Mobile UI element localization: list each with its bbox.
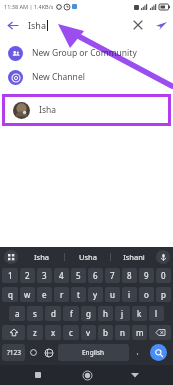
staticText: 11:38 AM | 1.4KB/s <box>4 3 54 10</box>
staticText: n <box>120 327 125 338</box>
staticText: x <box>51 327 56 338</box>
button[interactable]: New Group or Community <box>0 41 173 65</box>
staticText: a <box>15 308 20 319</box>
staticText: 0 <box>161 270 166 281</box>
staticText: English <box>82 348 105 357</box>
button[interactable]: English <box>58 344 129 361</box>
button[interactable]: 7 <box>105 268 120 283</box>
button[interactable]: Backspace <box>149 325 171 340</box>
button[interactable]: Ishani <box>111 247 156 266</box>
button[interactable]: 3 <box>37 268 52 283</box>
staticText: o <box>144 289 149 300</box>
button[interactable]: g <box>81 306 96 321</box>
button[interactable]: ?123 <box>2 344 25 361</box>
button[interactable]: Back <box>0 13 24 37</box>
button[interactable]: Home <box>77 365 97 385</box>
button[interactable]: m <box>132 325 147 340</box>
button[interactable]: 1 <box>2 268 18 283</box>
staticText: 4 <box>59 270 64 281</box>
staticText: Isha <box>28 19 46 31</box>
button[interactable]: w <box>20 287 35 302</box>
button[interactable]: e <box>37 287 52 302</box>
button[interactable]: j <box>115 306 130 321</box>
button[interactable]: p <box>156 287 171 302</box>
button[interactable]: Send <box>149 13 173 37</box>
button[interactable]: q <box>2 287 18 302</box>
button[interactable]: u <box>105 287 120 302</box>
button[interactable]: a <box>9 306 25 321</box>
staticText: h <box>103 308 108 319</box>
button[interactable]: l <box>149 306 164 321</box>
staticText: t <box>77 289 80 300</box>
staticText: 5 <box>76 270 81 281</box>
button[interactable]: c <box>63 325 79 340</box>
button[interactable]: s <box>27 306 43 321</box>
staticText: s <box>33 308 37 319</box>
staticText: 2 <box>25 270 30 281</box>
staticText: Isha <box>39 104 56 116</box>
staticText: New Channel <box>32 71 85 83</box>
button[interactable]: t <box>71 287 86 302</box>
button[interactable]: Clear <box>127 14 149 36</box>
button[interactable]: Shift <box>2 325 25 340</box>
button[interactable]: z <box>27 325 43 340</box>
button[interactable]: New Channel <box>0 65 173 89</box>
button[interactable]: 0 <box>156 268 171 283</box>
button[interactable]: o <box>139 287 154 302</box>
button[interactable]: Usha <box>65 247 110 266</box>
button[interactable]: d <box>45 306 61 321</box>
button[interactable]: Search <box>150 344 167 361</box>
staticText: f <box>70 308 73 319</box>
button[interactable]: r <box>54 287 69 302</box>
staticText: u <box>110 289 115 300</box>
button[interactable]: k <box>132 306 147 321</box>
staticText: r <box>60 289 64 300</box>
staticText: l <box>155 308 158 319</box>
staticText: j <box>121 308 124 319</box>
staticText: 9 <box>144 270 149 281</box>
button[interactable]: Period <box>131 344 143 361</box>
staticText: z <box>33 327 37 338</box>
button[interactable]: x <box>45 325 61 340</box>
staticText: Ishani <box>123 252 145 262</box>
button[interactable]: 8 <box>122 268 137 283</box>
staticText: b <box>103 327 108 338</box>
staticText: k <box>137 308 142 319</box>
staticText: 8 <box>127 270 132 281</box>
staticText: e <box>42 289 47 300</box>
staticText: 1 <box>8 270 13 281</box>
button[interactable]: v <box>81 325 96 340</box>
staticText: q <box>8 289 13 300</box>
button[interactable]: Keyboard options <box>4 250 18 264</box>
staticText: ?123 <box>7 348 21 357</box>
button[interactable]: f <box>63 306 79 321</box>
staticText: p <box>161 289 166 300</box>
button[interactable]: Emoji <box>27 344 40 361</box>
button[interactable]: 4 <box>54 268 69 283</box>
button[interactable]: Isha <box>5 97 168 123</box>
button[interactable]: b <box>98 325 113 340</box>
staticText: w <box>24 289 31 300</box>
button[interactable]: Language <box>42 344 56 361</box>
staticText: 6 <box>93 270 98 281</box>
button[interactable]: h <box>98 306 113 321</box>
staticText: Isha <box>34 252 49 262</box>
staticText: i <box>128 289 131 300</box>
button[interactable]: y <box>88 287 103 302</box>
button[interactable]: 6 <box>88 268 103 283</box>
button[interactable]: Back <box>125 365 145 385</box>
button[interactable]: 9 <box>139 268 154 283</box>
staticText: c <box>69 327 73 338</box>
button[interactable]: Voice input <box>156 250 170 264</box>
staticText: y <box>93 289 98 300</box>
button[interactable]: i <box>122 287 137 302</box>
button[interactable]: 2 <box>20 268 35 283</box>
staticText: 7 <box>110 270 115 281</box>
button[interactable]: Recents <box>28 365 48 385</box>
button[interactable]: n <box>115 325 130 340</box>
staticText: New Group or Community <box>32 47 137 59</box>
staticText: d <box>51 308 56 319</box>
button[interactable]: Isha <box>18 247 64 266</box>
button[interactable]: 5 <box>71 268 86 283</box>
staticText: g <box>86 308 91 319</box>
